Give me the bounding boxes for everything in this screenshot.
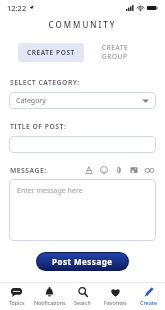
button[interactable]: CREATE POST bbox=[18, 43, 84, 62]
button[interactable]: Add link bbox=[144, 165, 154, 175]
staticText: TITLE OF POST: bbox=[10, 122, 67, 131]
button[interactable]: Create bbox=[132, 283, 165, 310]
staticText: CREATE GROUP bbox=[102, 43, 149, 61]
staticText: CREATE POST bbox=[27, 48, 75, 57]
button[interactable]: Enter message here bbox=[9, 179, 156, 241]
staticText: Search bbox=[74, 299, 91, 306]
button[interactable]: Text format bbox=[84, 165, 94, 175]
button[interactable]: Favorites bbox=[99, 283, 132, 310]
staticText: Notifications bbox=[34, 299, 66, 306]
staticText: Create bbox=[140, 299, 158, 306]
button[interactable]: Post Message bbox=[37, 253, 128, 270]
staticText: Post Message bbox=[52, 256, 113, 267]
staticText: Topics bbox=[9, 299, 25, 306]
staticText: Category bbox=[16, 96, 46, 106]
button[interactable]: Emoji bbox=[99, 165, 109, 175]
staticText: COMMUNITY bbox=[0, 19, 165, 30]
button[interactable]: Add image bbox=[129, 165, 139, 175]
button[interactable]: Notifications bbox=[33, 283, 66, 310]
button[interactable]: Attach file bbox=[114, 165, 124, 175]
button[interactable]: Search bbox=[66, 283, 99, 310]
staticText: 12:22 bbox=[7, 3, 27, 13]
button[interactable]: Topics bbox=[0, 283, 33, 310]
staticText: MESSAGE: bbox=[10, 166, 47, 175]
button[interactable]: Category bbox=[9, 92, 156, 109]
button[interactable]: CREATE GROUP bbox=[96, 38, 155, 66]
staticText: Enter message here bbox=[17, 186, 83, 196]
button[interactable] bbox=[9, 136, 156, 153]
staticText: Favorites bbox=[104, 299, 127, 306]
staticText: SELECT CATEGORY: bbox=[10, 78, 80, 87]
